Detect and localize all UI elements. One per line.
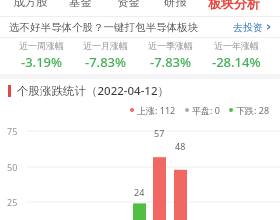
staticText: 75 xyxy=(7,125,18,137)
staticText: 57 xyxy=(154,127,165,139)
staticText: 成方股 xyxy=(13,0,48,9)
staticText: 研报 xyxy=(164,0,187,9)
staticText: 资金 xyxy=(117,0,140,9)
staticText: -7.83% xyxy=(85,53,127,70)
staticText: 个股涨跌统计（2022-04-12） xyxy=(17,83,170,99)
staticText: 近一月涨幅 xyxy=(83,40,128,51)
staticText: 25 xyxy=(7,196,18,208)
staticText: 基金 xyxy=(69,0,92,9)
staticText: 选不好半导体个股？一键打包半导体板块 xyxy=(9,21,198,34)
staticText: 近一年涨幅 xyxy=(214,40,259,51)
staticText: 24 xyxy=(134,186,145,198)
button[interactable]: 研报 xyxy=(152,0,198,9)
staticText: 上涨: 112 xyxy=(137,104,176,116)
staticText: 近一周涨幅 xyxy=(19,40,64,51)
staticText: -28.14% xyxy=(212,53,261,70)
button[interactable]: 选不好半导体个股？一键打包半导体板块 xyxy=(0,17,280,37)
staticText: 平盘: 0 xyxy=(192,104,220,116)
button[interactable]: 基金 xyxy=(56,0,104,9)
staticText: 48 xyxy=(175,140,186,152)
staticText: -7.83% xyxy=(150,53,192,70)
staticText: 板块分析 xyxy=(208,0,260,11)
button[interactable]: 资金 xyxy=(104,0,152,9)
staticText: 50 xyxy=(7,161,18,173)
staticText: 近一季涨幅 xyxy=(148,40,193,51)
button[interactable]: 板块分析 xyxy=(198,0,270,11)
button[interactable]: 成方股 xyxy=(4,0,56,9)
staticText: -3.19% xyxy=(21,53,63,70)
staticText: 下跌: 28 xyxy=(236,104,270,116)
staticText: 去投资 xyxy=(233,21,263,34)
